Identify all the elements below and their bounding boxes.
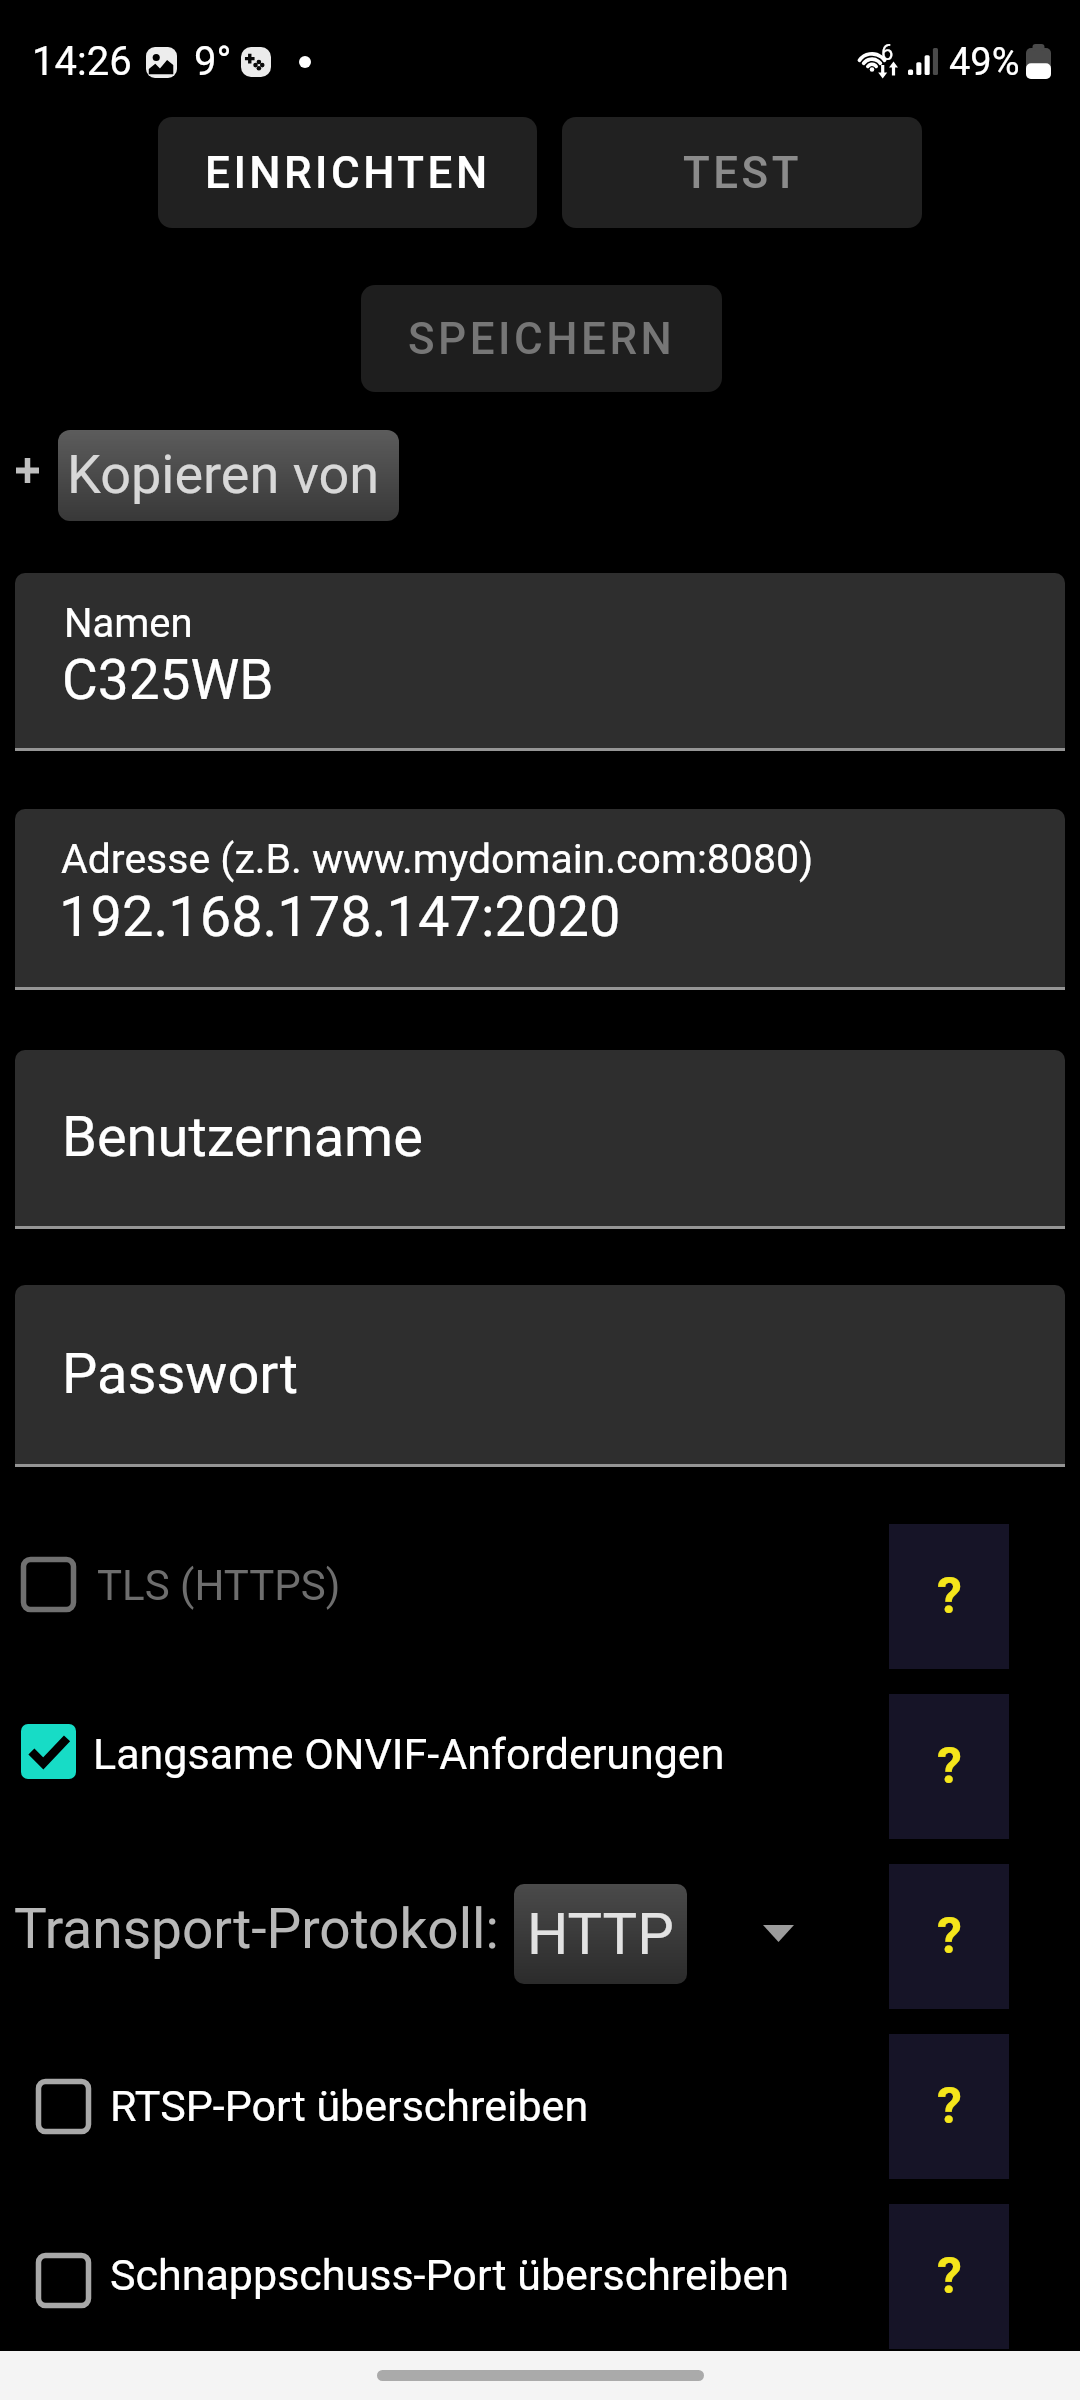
- staticText: SPEICHERN: [408, 313, 676, 365]
- button[interactable]: Kopieren von: [58, 430, 399, 521]
- button[interactable]: Protokoll auswählen: [740, 1895, 816, 1971]
- staticText: TLS (HTTPS): [97, 1561, 341, 1610]
- staticText: Langsame ONVIF-Anforderungen: [93, 1729, 725, 1779]
- staticText: ?: [937, 1737, 962, 1796]
- button[interactable]: Namen: [15, 573, 1065, 748]
- button[interactable]: Passwort: [15, 1285, 1065, 1464]
- staticText: Adresse (z.B. www.mydomain.com:8080): [61, 835, 814, 883]
- button[interactable]: TEST: [562, 117, 922, 228]
- staticText: Namen: [64, 600, 193, 647]
- staticText: HTTP: [527, 1900, 674, 1968]
- staticText: Kopieren von: [67, 443, 380, 506]
- staticText: EINRICHTEN: [205, 147, 491, 199]
- staticText: ?: [937, 2247, 962, 2306]
- staticText: Schnappschuss-Port überschreiben: [110, 2250, 789, 2300]
- staticText: ?: [937, 2077, 962, 2136]
- staticText: ?: [937, 1907, 962, 1966]
- button[interactable]: RTSP-Port überschreiben: [28, 2061, 888, 2151]
- button[interactable]: HTTP: [514, 1884, 687, 1984]
- staticText: RTSP-Port überschreiben: [110, 2081, 589, 2131]
- button[interactable]: Langsame ONVIF-Anforderungen: [13, 1706, 873, 1796]
- button[interactable]: Adresse (z.B. www.mydomain.com:8080): [15, 809, 1065, 987]
- staticText: C325WB: [62, 648, 274, 712]
- button[interactable]: Hilfe: [889, 1694, 1009, 1839]
- staticText: 14:26: [32, 38, 132, 85]
- staticText: ?: [937, 1567, 962, 1626]
- staticText: TEST: [683, 147, 802, 199]
- button[interactable]: Schnappschuss-Port überschreiben: [28, 2235, 888, 2325]
- button[interactable]: SPEICHERN: [361, 285, 722, 392]
- button[interactable]: Hilfe: [889, 1864, 1009, 2009]
- button[interactable]: Hilfe: [889, 1524, 1009, 1669]
- staticText: Transport-Protokoll:: [14, 1897, 499, 1961]
- button[interactable]: Hilfe: [889, 2204, 1009, 2349]
- button[interactable]: TLS (HTTPS): [13, 1539, 873, 1629]
- button[interactable]: Hilfe: [889, 2034, 1009, 2179]
- staticText: 49%: [949, 40, 1020, 85]
- button[interactable]: EINRICHTEN: [158, 117, 537, 228]
- staticText: 9°: [194, 38, 232, 85]
- staticText: Benutzername: [62, 1104, 423, 1170]
- staticText: 6: [881, 40, 894, 66]
- button[interactable]: Benutzername: [15, 1050, 1065, 1226]
- staticText: Passwort: [62, 1341, 298, 1407]
- staticText: 192.168.178.147:2020: [59, 884, 621, 950]
